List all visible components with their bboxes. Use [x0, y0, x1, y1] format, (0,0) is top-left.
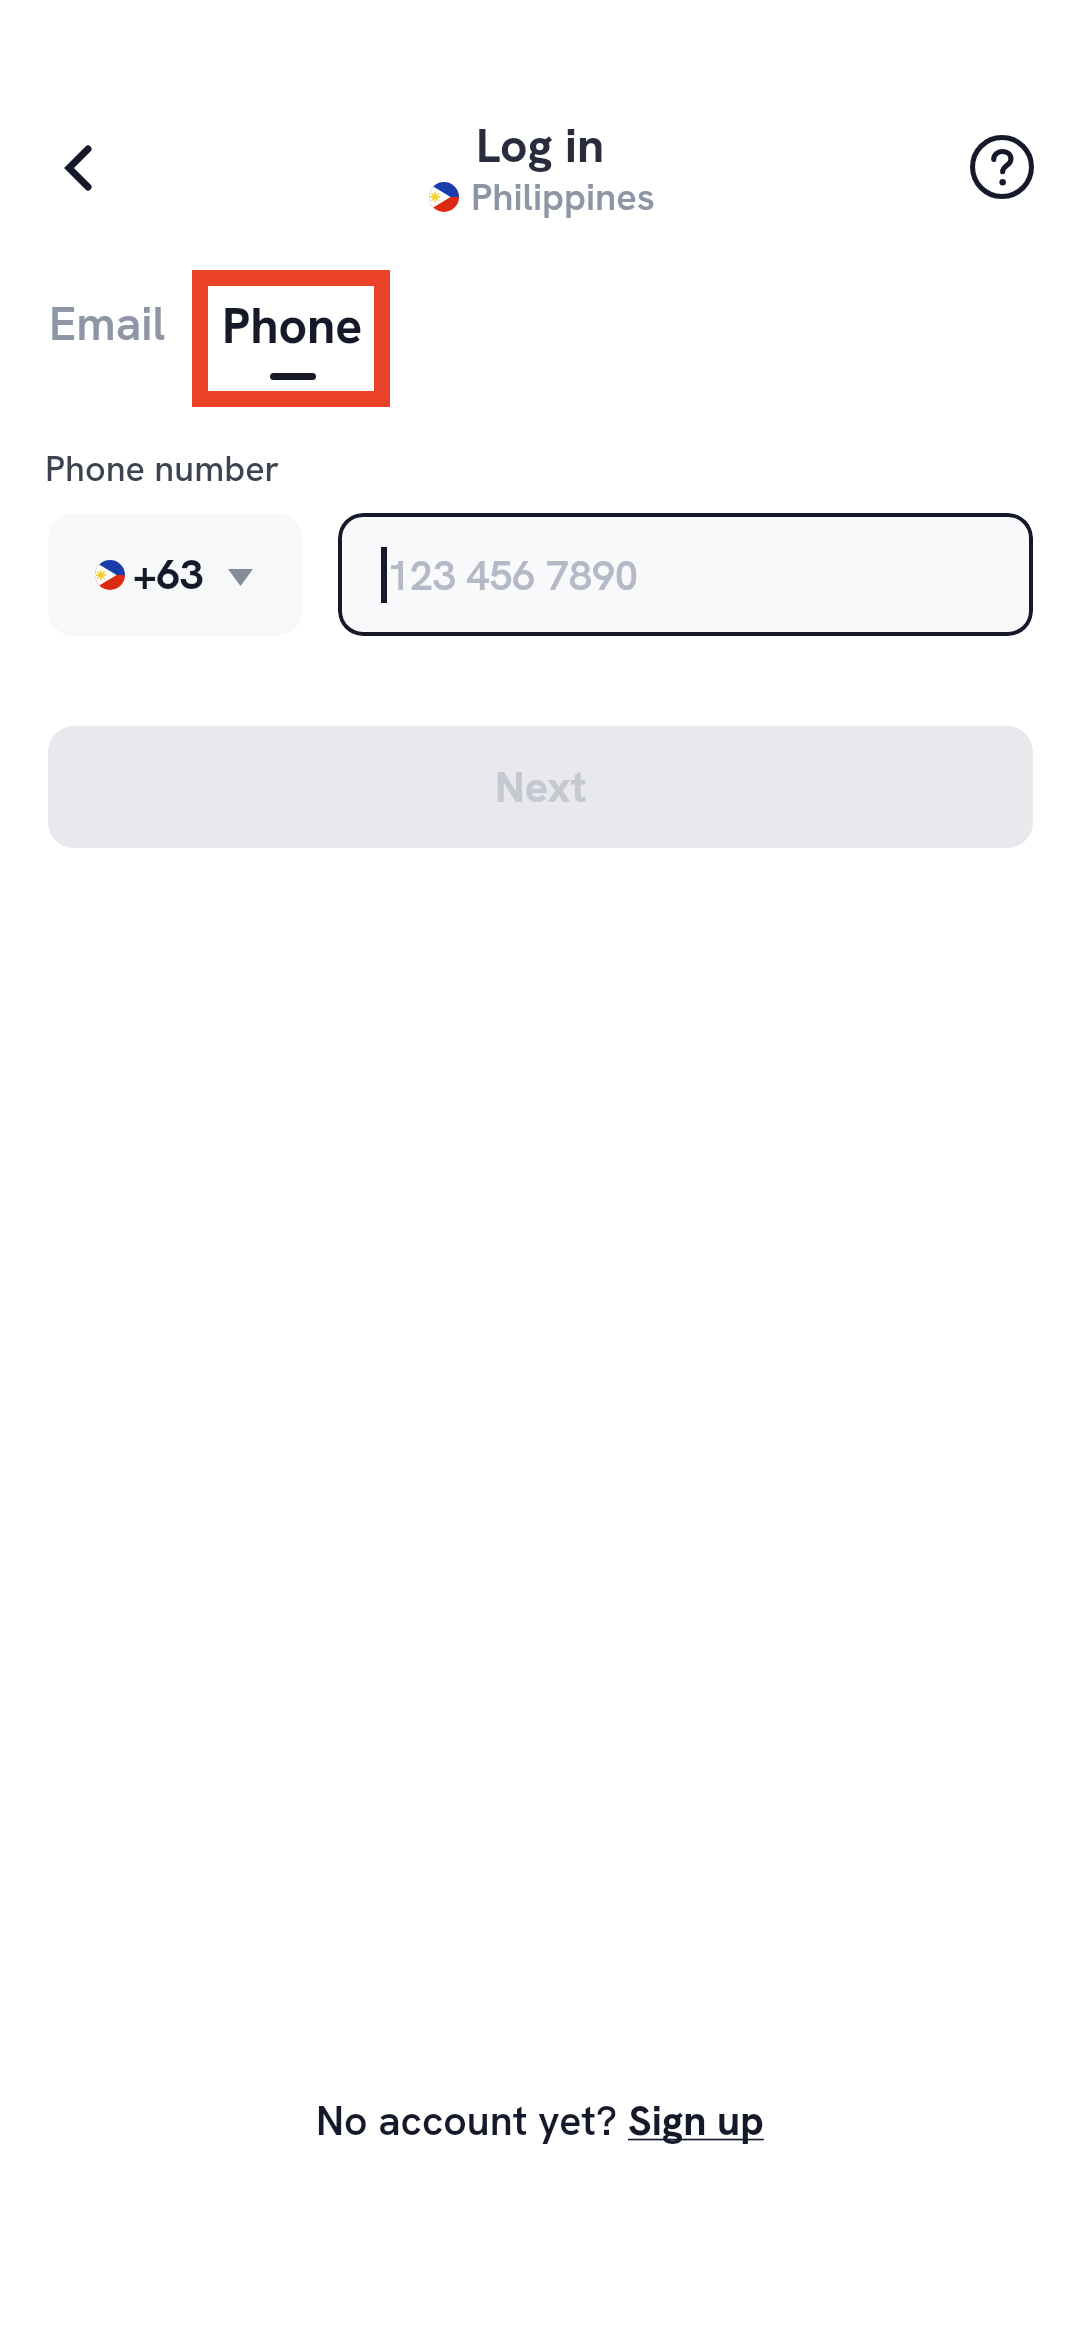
- staticText: Next: [495, 759, 587, 815]
- staticText: Sign up: [628, 2094, 764, 2147]
- staticText: +63: [133, 547, 204, 602]
- button[interactable]: Email: [49, 293, 166, 354]
- staticText: Philippines: [471, 172, 655, 222]
- button[interactable]: Back: [34, 124, 122, 212]
- button[interactable]: Help: [956, 121, 1048, 213]
- button[interactable]: Phone: [222, 293, 363, 380]
- button[interactable]: Next: [48, 726, 1033, 848]
- staticText: 123 456 7890: [387, 549, 638, 602]
- staticText: Phone: [222, 293, 363, 358]
- button[interactable]: 123 456 7890: [338, 513, 1033, 636]
- staticText: Log in: [476, 114, 605, 177]
- button[interactable]: No account yet?: [316, 2094, 764, 2147]
- staticText: No account yet?: [316, 2094, 628, 2147]
- button[interactable]: +63: [48, 513, 302, 636]
- staticText: Email: [49, 293, 166, 354]
- staticText: Phone number: [45, 445, 280, 492]
